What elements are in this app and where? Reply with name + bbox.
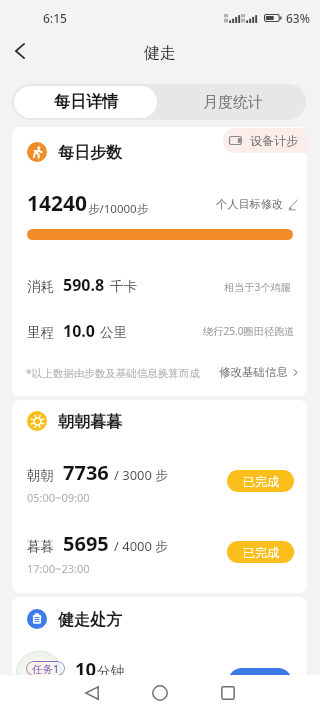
staticText: 6:15 [43,10,67,26]
staticText: 健走处方 [58,610,122,630]
staticText: 14240 [27,189,88,218]
staticText: / 3000 步 [114,466,169,484]
staticText: 相当于3个鸡腿 [224,280,291,294]
staticText: 5695 [63,530,109,557]
staticText: 朝朝暮暮 [58,412,122,432]
button[interactable] [228,668,292,677]
button[interactable]: Back [72,675,112,711]
button[interactable]: 月度统计 [159,84,306,120]
staticText: 05:00~09:00 [27,490,90,505]
staticText: 里程 [27,324,54,341]
staticText: 17:00~23:00 [27,561,90,576]
staticText: 分钟 [97,663,124,677]
staticText: 任务1 [32,662,60,676]
staticText: / 4000 步 [114,537,169,555]
staticText: 已完成 [243,545,279,560]
button[interactable]: Home [140,675,180,711]
button[interactable]: 个人目标修改 [216,197,299,211]
staticText: 朝朝 [27,467,54,484]
button[interactable]: 已完成 [227,541,294,563]
staticText: 10 [75,656,97,677]
staticText: 暮暮 [27,538,54,555]
staticText: 健走 [144,43,176,63]
button[interactable]: Back [0,31,40,71]
staticText: *以上数据由步数及基础信息换算而成 [26,366,200,380]
staticText: 590.8 [63,274,105,296]
staticText: 已完成 [243,474,279,489]
staticText: 7736 [63,459,109,486]
staticText: 消耗 [27,278,54,295]
staticText: 每日详情 [54,92,118,112]
staticText: 每日步数 [58,143,122,163]
staticText: 10.0 [63,320,95,342]
button[interactable]: 已完成 [227,470,294,492]
staticText: 设备计步 [250,133,298,148]
button[interactable]: 每日详情 [14,86,157,118]
button[interactable]: Recents [208,675,248,711]
staticText: 千卡 [110,278,137,295]
button[interactable]: 修改基础信息 [219,365,300,379]
staticText: 月度统计 [203,93,263,112]
staticText: 63% [286,10,310,26]
staticText: 绕行25.0圈田径跑道 [203,324,295,338]
staticText: 步/10000步 [88,201,149,217]
staticText: 修改基础信息 [219,365,288,379]
staticText: 个人目标修改 [216,197,284,211]
staticText: 公里 [100,324,127,341]
button[interactable]: 设备计步 [223,128,307,153]
